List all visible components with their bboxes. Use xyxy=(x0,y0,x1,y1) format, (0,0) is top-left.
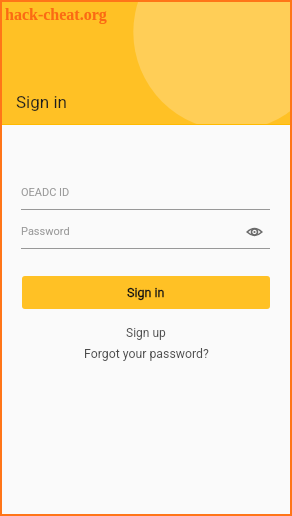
staticText: Password xyxy=(21,225,70,238)
staticText: Forgot your password? xyxy=(84,347,209,361)
staticText: Sign in xyxy=(127,285,165,300)
staticText: Sign in xyxy=(16,92,67,112)
staticText: OEADC ID xyxy=(21,186,70,199)
staticText: Sign up xyxy=(126,326,166,340)
button[interactable]: Show password xyxy=(243,222,265,242)
button[interactable]: Sign in xyxy=(22,276,270,309)
button[interactable]: Sign up xyxy=(2,324,290,342)
button[interactable]: Forgot your password? xyxy=(2,345,290,363)
staticText: hack-cheat.org xyxy=(5,6,107,24)
